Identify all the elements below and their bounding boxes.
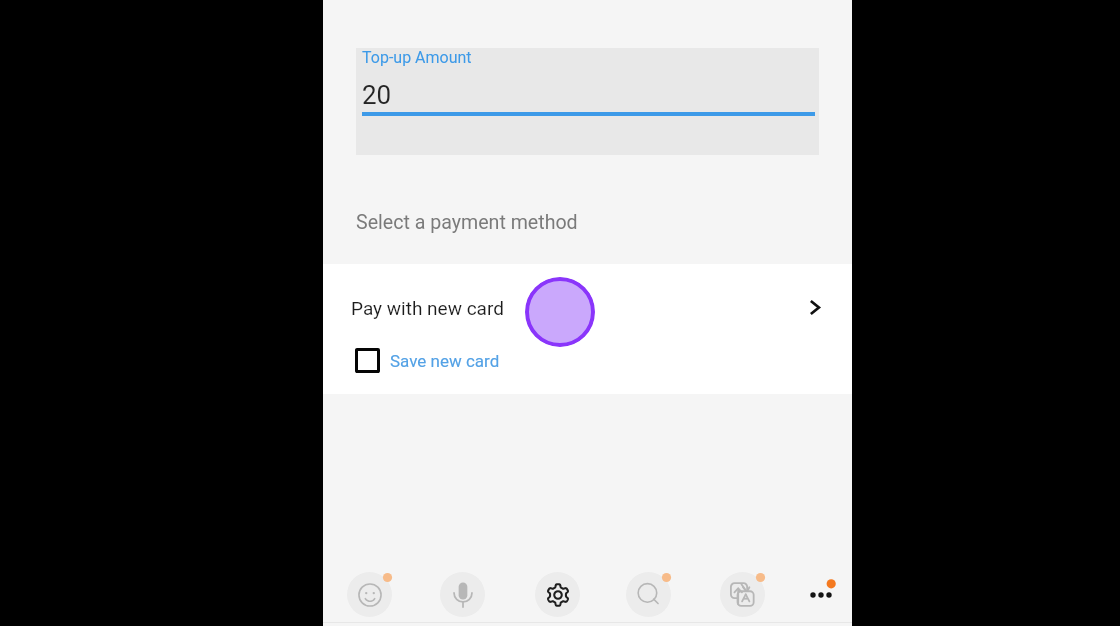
other: Next (793, 287, 833, 327)
button[interactable]: Translate (720, 572, 765, 617)
button[interactable]: Save new card (349, 342, 529, 380)
button[interactable]: Pay with new card (323, 264, 852, 344)
button[interactable]: More options (796, 572, 841, 617)
button[interactable]: Settings (535, 572, 580, 617)
staticText: Pay with new card (351, 297, 504, 319)
staticText: Select a payment method (356, 211, 578, 234)
button[interactable]: Emoji (347, 572, 392, 617)
staticText: Save new card (390, 351, 500, 371)
staticText: Top-up Amount (362, 48, 472, 67)
button[interactable]: Top-up Amount (356, 48, 819, 155)
button[interactable]: Voice input (440, 572, 485, 617)
button[interactable]: Search (626, 572, 671, 617)
staticText: 20 (362, 80, 392, 110)
